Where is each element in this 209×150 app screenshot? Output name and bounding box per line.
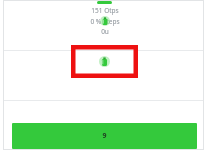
staticText: 0 % Steps [60, 17, 150, 26]
staticText: 9 [102, 131, 107, 141]
button[interactable]: Progress indicator [97, 1, 112, 4]
button[interactable]: Selected entry [0, 51, 209, 100]
button[interactable]: Step statistics [60, 6, 150, 36]
staticText: 151 Otps [60, 6, 150, 15]
staticText: 0u [60, 27, 150, 36]
button[interactable]: 9 [12, 123, 197, 149]
